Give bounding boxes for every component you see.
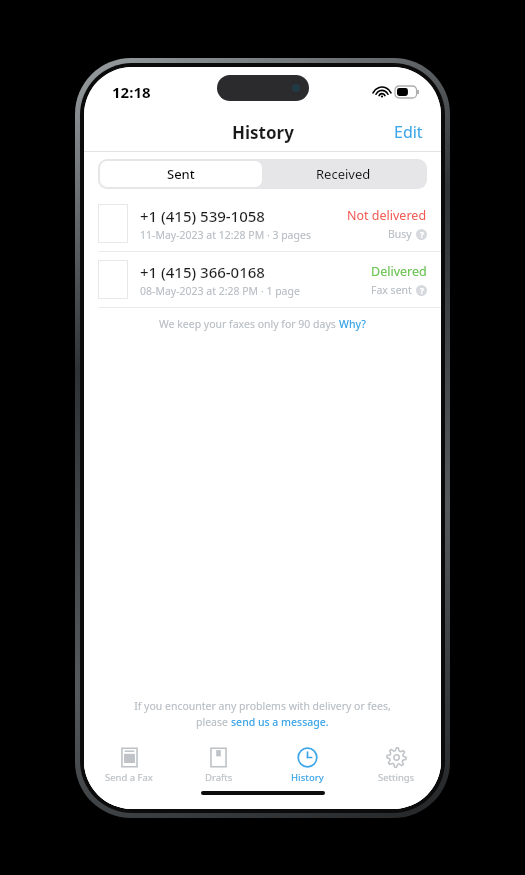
button[interactable]: History: [263, 743, 352, 791]
button[interactable]: send us a message.: [231, 715, 329, 729]
staticText: +1 (415) 539-1058: [140, 206, 265, 226]
staticText: Busy: [388, 227, 412, 241]
staticText: Drafts: [205, 771, 233, 784]
button[interactable]: Send a Fax: [84, 743, 174, 791]
staticText: Sent: [167, 165, 195, 183]
staticText: ?: [420, 229, 424, 240]
staticText: If you encounter any problems with deliv…: [134, 699, 391, 713]
staticText: Settings: [378, 771, 415, 784]
button[interactable]: +1 (415) 366-0168: [84, 252, 441, 307]
staticText: Send a Fax: [105, 771, 153, 784]
staticText: please: [196, 715, 231, 729]
button[interactable]: Why?: [339, 317, 366, 331]
button[interactable]: Received: [262, 161, 425, 187]
other: More info: [416, 285, 427, 296]
staticText: History: [291, 771, 324, 784]
staticText: Received: [316, 165, 371, 183]
staticText: +1 (415) 366-0168: [140, 262, 265, 282]
button[interactable]: Drafts: [174, 743, 263, 791]
button[interactable]: Sent: [100, 161, 262, 187]
staticText: 08-May-2023 at 2:28 PM · 1 page: [140, 284, 300, 298]
staticText: Not delivered: [347, 207, 427, 224]
other: More info: [416, 229, 427, 240]
button[interactable]: Settings: [352, 743, 441, 791]
staticText: 11-May-2023 at 12:28 PM · 3 pages: [140, 228, 311, 242]
staticText: We keep your faxes only for 90 days: [159, 317, 339, 331]
staticText: Delivered: [371, 263, 427, 280]
button[interactable]: Edit: [376, 115, 441, 149]
staticText: send us a message.: [231, 715, 329, 729]
staticText: Why?: [339, 317, 366, 331]
staticText: Edit: [394, 121, 423, 143]
staticText: History: [232, 121, 294, 144]
staticText: Fax sent: [371, 283, 412, 297]
button[interactable]: +1 (415) 539-1058: [84, 196, 441, 251]
staticText: ?: [420, 285, 424, 296]
staticText: 12:18: [112, 82, 151, 102]
